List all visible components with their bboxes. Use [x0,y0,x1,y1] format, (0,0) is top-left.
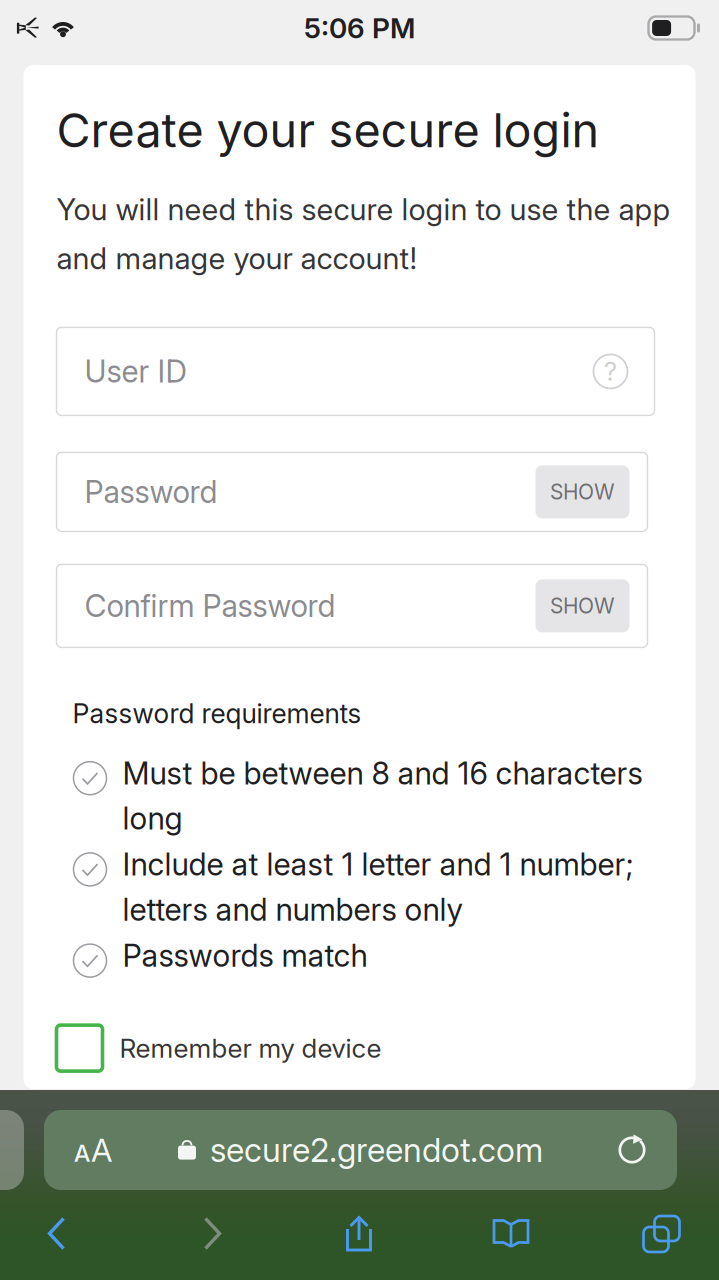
staticText: Create your secure login [56,102,599,158]
staticText: SHOW [550,479,615,505]
staticText: Must be between 8 and 16 characters long [122,755,642,837]
staticText: secure2.greendot.com [210,1130,543,1170]
staticText: Remember my device [119,1032,381,1064]
button[interactable]: Forward [114,1206,312,1262]
staticText: ᴀA [74,1131,112,1169]
staticText: Passwords match [122,937,367,974]
staticText: Confirm Password [84,587,335,624]
button[interactable]: Tabs [616,1206,707,1262]
staticText: Password [84,473,217,510]
button[interactable]: SHOW [535,579,629,632]
button[interactable]: SHOW [535,465,629,518]
button[interactable]: Remember my device [56,1025,616,1071]
button[interactable]: ᴀA [44,1110,677,1190]
staticText: You will need this secure login to use t… [56,191,670,276]
button[interactable]: Back [0,1206,114,1262]
staticText: Password requirements [72,697,361,730]
button[interactable]: Bookmarks [406,1206,616,1262]
staticText: User ID [84,353,186,390]
button[interactable]: What is a User ID? [593,354,627,388]
staticText: SHOW [550,593,615,619]
staticText: Include at least 1 letter and 1 number; … [122,846,633,928]
staticText: 5:06 PM [304,11,415,45]
staticText: ? [604,356,617,387]
button[interactable]: Share [312,1206,406,1262]
